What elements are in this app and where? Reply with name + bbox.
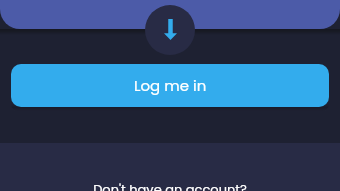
button[interactable]: Log me in: [11, 64, 329, 107]
staticText: Log me in: [134, 75, 207, 96]
button[interactable]: Don't have an account?: [93, 180, 247, 191]
button[interactable]: Scroll down: [145, 5, 195, 55]
